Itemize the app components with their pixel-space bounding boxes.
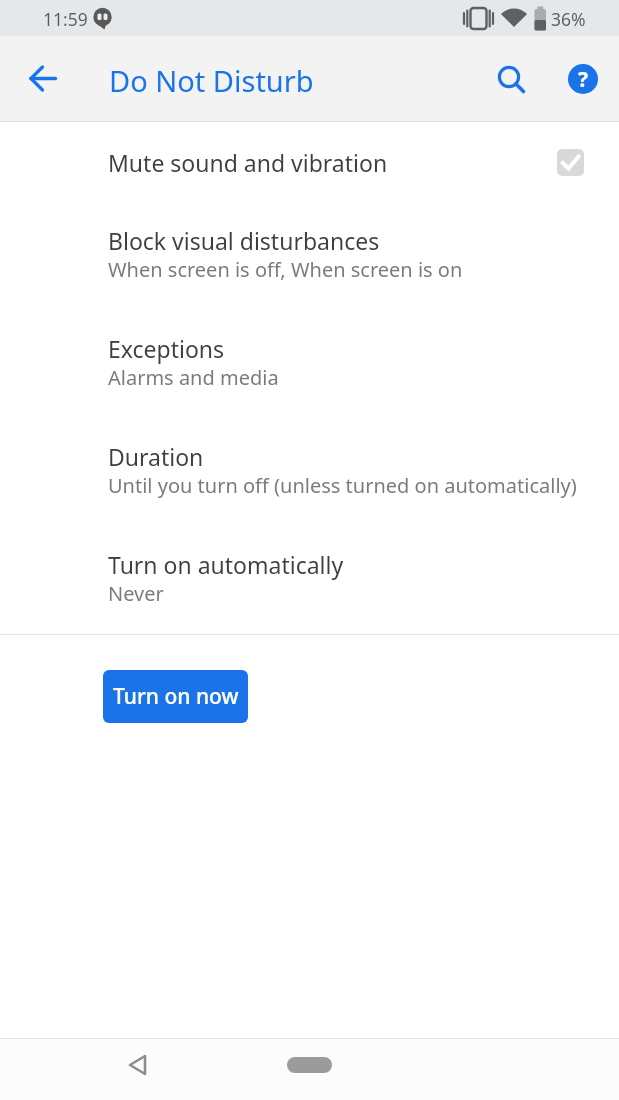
button[interactable] xyxy=(487,36,535,121)
staticText: Turn on now xyxy=(113,682,239,711)
staticText: Exceptions xyxy=(108,333,225,364)
button[interactable] xyxy=(117,1046,159,1088)
button[interactable]: Turn on now xyxy=(103,670,248,723)
staticText: ? xyxy=(578,65,589,94)
staticText: 11:59 xyxy=(43,7,88,31)
staticText: Block visual disturbances xyxy=(108,225,380,256)
staticText: Never xyxy=(108,580,164,607)
button[interactable] xyxy=(287,1057,332,1073)
button[interactable]: Duration xyxy=(0,418,619,526)
staticText: When screen is off, When screen is on xyxy=(108,256,463,283)
staticText: Duration xyxy=(108,441,204,472)
staticText: Do Not Disturb xyxy=(109,61,314,100)
staticText: Mute sound and vibration xyxy=(108,147,388,178)
button[interactable]: Mute sound and vibration xyxy=(0,122,619,202)
staticText: 36% xyxy=(551,7,586,31)
button[interactable] xyxy=(15,36,71,121)
button[interactable]: Turn on automatically xyxy=(0,526,619,634)
staticText: Alarms and media xyxy=(108,364,279,391)
staticText: Turn on automatically xyxy=(108,549,344,580)
staticText: Until you turn off (unless turned on aut… xyxy=(108,472,577,499)
button[interactable]: Block visual disturbances xyxy=(0,202,619,310)
button[interactable]: Exceptions xyxy=(0,310,619,418)
button[interactable]: ? xyxy=(568,36,598,121)
